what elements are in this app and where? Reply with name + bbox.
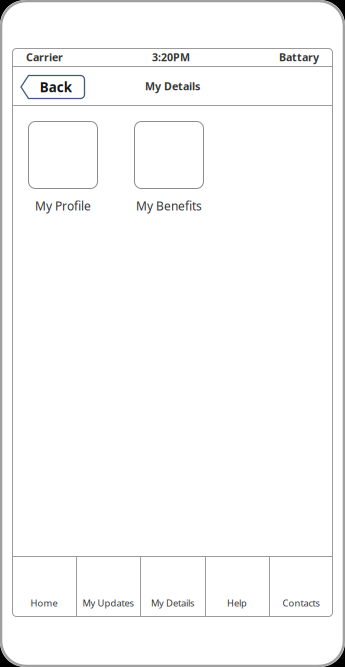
staticText: Carrier [26,50,63,64]
staticText: My Profile [35,198,91,214]
staticText: Back [40,78,72,96]
staticText: 3:20PM [152,50,190,64]
button[interactable]: Back [21,73,84,98]
staticText: Battary [279,50,319,64]
button[interactable]: My Benefits [134,121,204,214]
staticText: My Updates [82,597,133,609]
button[interactable]: My Updates [76,556,140,617]
button[interactable]: My Details [140,556,205,617]
button[interactable]: Home [12,556,76,617]
staticText: Home [30,597,57,609]
button[interactable]: Help [205,556,269,617]
staticText: My Details [145,79,200,93]
button[interactable]: My Profile [28,121,98,214]
staticText: My Benefits [136,198,202,214]
staticText: Contacts [282,597,319,609]
staticText: Help [227,597,247,609]
button[interactable]: Contacts [269,556,333,617]
staticText: My Details [151,597,194,609]
